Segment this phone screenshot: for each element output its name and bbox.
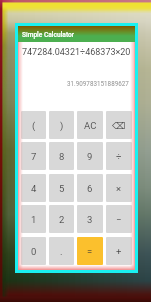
staticText: . [60,246,63,257]
staticText: 0 [31,246,37,257]
staticText: 5 [59,183,65,194]
button[interactable]: ) [49,111,74,139]
staticText: ⌫ [112,120,126,131]
staticText: ) [60,120,64,131]
staticText: 9 [87,151,93,162]
staticText: AC [84,120,97,131]
button[interactable]: ÷ [106,142,132,170]
staticText: 1 [31,214,37,225]
button[interactable]: 8 [49,142,74,170]
staticText: 2 [59,214,65,225]
button[interactable]: 0 [21,237,46,265]
staticText: + [116,246,122,257]
button[interactable]: 5 [49,174,74,202]
staticText: = [87,246,93,257]
staticText: 747284.04321÷468373×20 [22,47,131,58]
staticText: × [116,183,122,194]
button[interactable]: 6 [77,174,103,202]
staticText: 31.909783151889627 [67,80,129,87]
staticText: ( [32,120,36,131]
staticText: ÷ [116,151,122,162]
button[interactable]: 1 [21,205,46,233]
staticText: 3 [87,214,93,225]
button[interactable]: ( [21,111,46,139]
staticText: 6 [87,183,93,194]
button[interactable]: 4 [21,174,46,202]
staticText: 7 [31,151,37,162]
button[interactable]: − [106,205,132,233]
button[interactable]: 2 [49,205,74,233]
button[interactable]: ⌫ [106,111,132,139]
button[interactable]: + [106,237,132,265]
staticText: − [116,214,122,225]
button[interactable]: = [77,237,103,265]
staticText: Simple Calculator [22,31,75,39]
button[interactable]: × [106,174,132,202]
staticText: 4 [31,183,37,194]
button[interactable]: 9 [77,142,103,170]
button[interactable]: AC [77,111,103,139]
button[interactable]: 7 [21,142,46,170]
button[interactable]: Simple Calculator [18,26,135,42]
button[interactable]: 3 [77,205,103,233]
staticText: 8 [59,151,65,162]
